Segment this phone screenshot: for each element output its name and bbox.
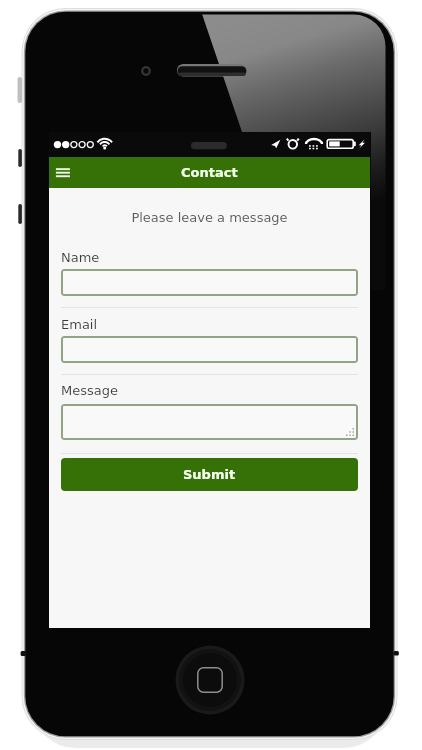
staticText: Please leave a message xyxy=(49,210,370,225)
button[interactable] xyxy=(61,336,358,363)
staticText: Submit xyxy=(183,467,236,482)
button[interactable]: Submit xyxy=(61,458,358,491)
staticText: Message xyxy=(61,383,118,398)
button[interactable] xyxy=(61,269,358,296)
staticText: Name xyxy=(61,250,100,265)
button[interactable]: Menu xyxy=(49,157,83,188)
staticText: Email xyxy=(61,317,98,332)
button[interactable] xyxy=(61,404,358,440)
staticText: Contact xyxy=(181,165,238,180)
